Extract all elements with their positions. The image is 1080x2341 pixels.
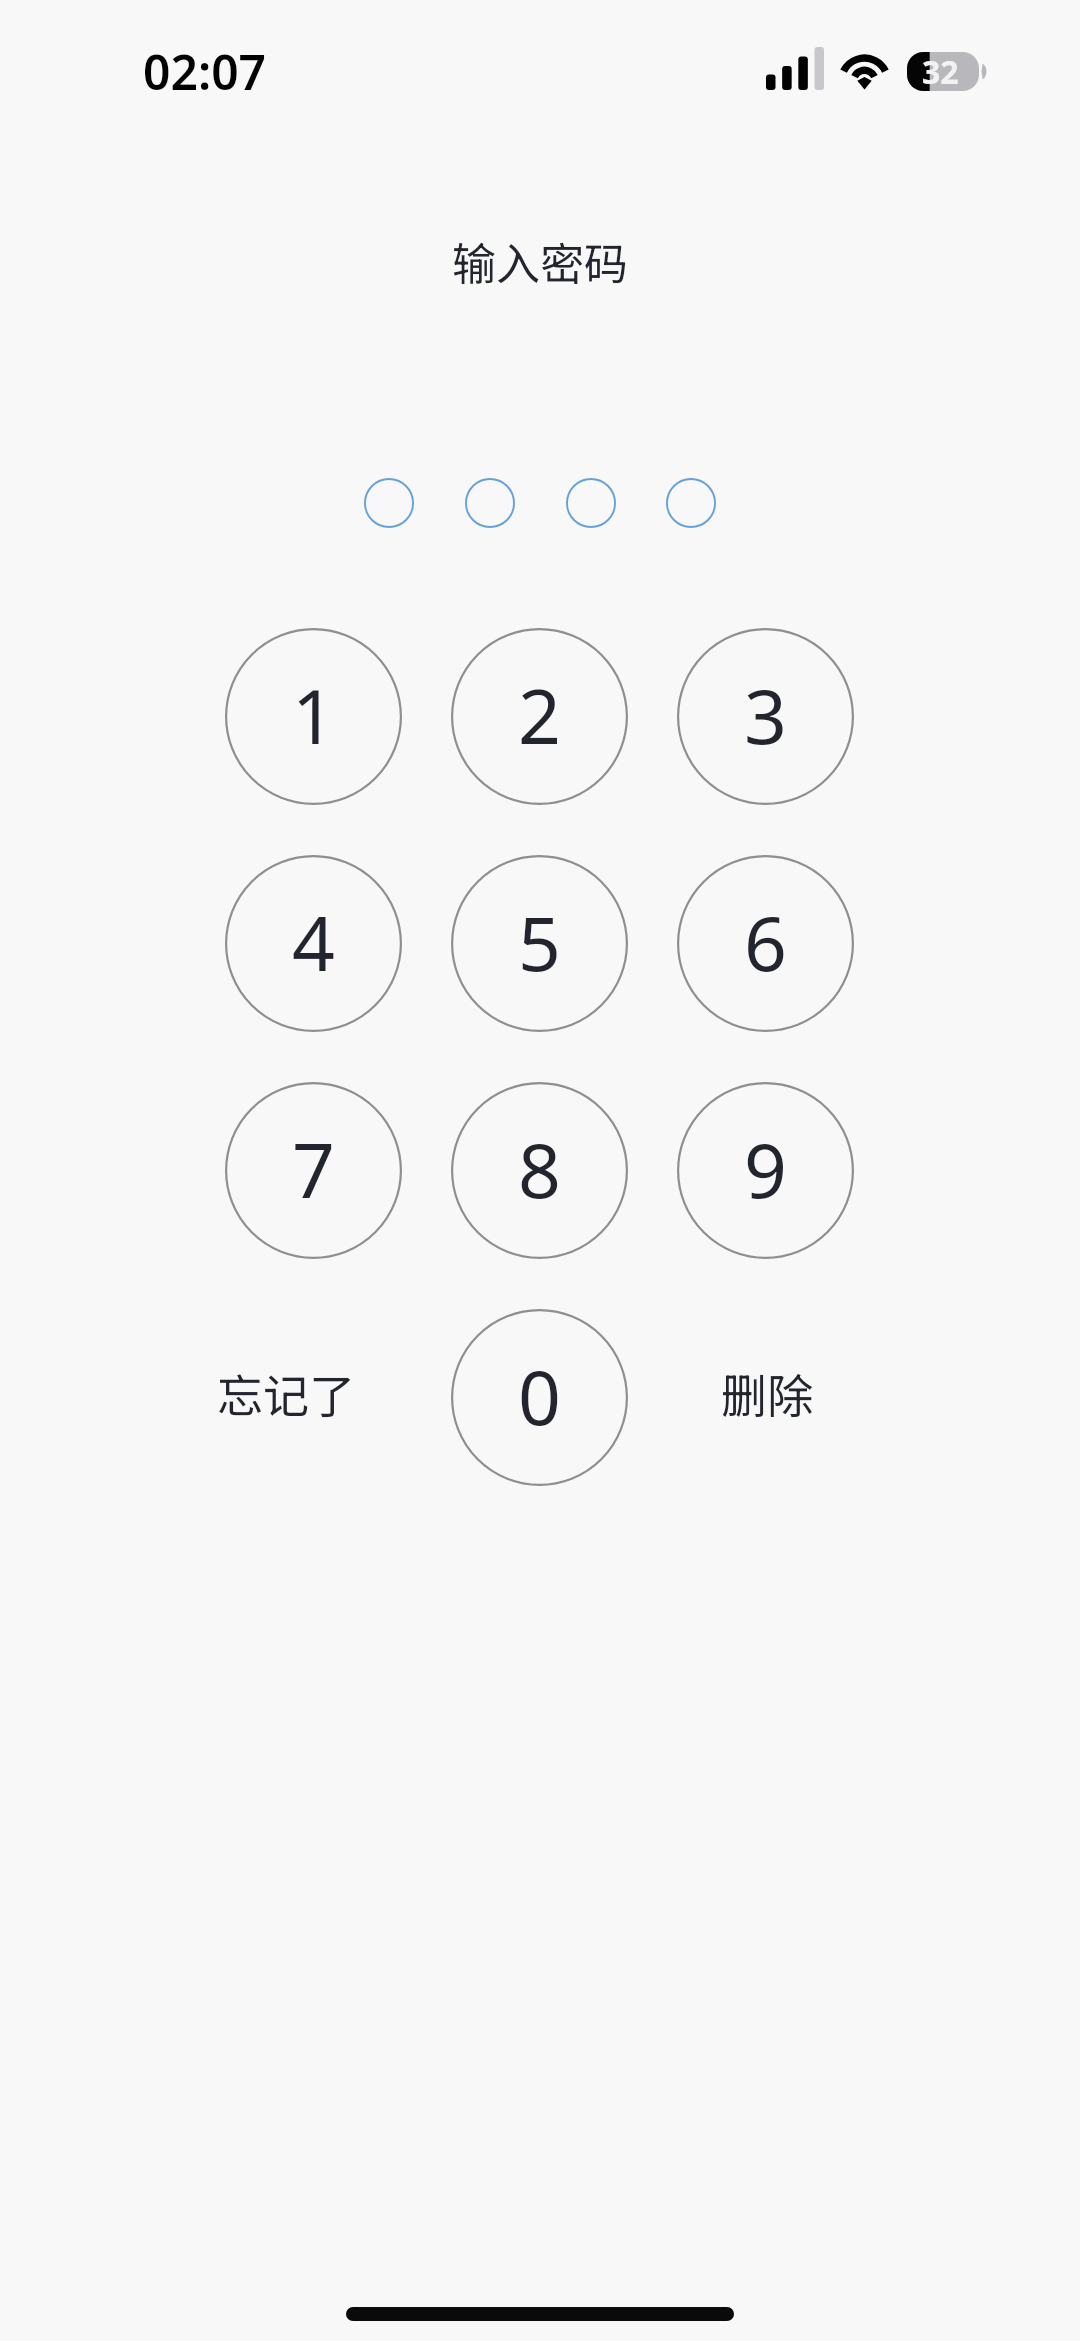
staticText: 3: [744, 664, 787, 766]
staticText: 4: [292, 891, 335, 993]
button[interactable]: 8: [451, 1082, 628, 1259]
staticText: 输入密码: [452, 229, 628, 293]
staticText: 0: [518, 1345, 561, 1447]
button[interactable]: 5: [451, 855, 628, 1032]
staticText: 删除: [721, 1360, 813, 1427]
button[interactable]: 6: [677, 855, 854, 1032]
button[interactable]: 1: [225, 628, 402, 805]
other: Cellular signal: [766, 47, 824, 90]
button[interactable]: 0: [451, 1309, 628, 1486]
staticText: 2: [518, 664, 561, 766]
button[interactable]: 忘记了: [186, 1333, 386, 1453]
staticText: 6: [744, 891, 787, 993]
staticText: 32: [922, 50, 959, 89]
staticText: 9: [744, 1118, 787, 1220]
button[interactable]: 7: [225, 1082, 402, 1259]
other: Battery 32 percent: [907, 52, 985, 91]
button[interactable]: 4: [225, 855, 402, 1032]
staticText: 02:07: [143, 39, 267, 104]
staticText: 1: [292, 664, 335, 766]
button[interactable]: 2: [451, 628, 628, 805]
staticText: 7: [292, 1118, 335, 1220]
staticText: 8: [518, 1118, 561, 1220]
button[interactable]: 3: [677, 628, 854, 805]
staticText: 忘记了: [217, 1360, 355, 1427]
other: Wi-Fi: [840, 54, 889, 90]
button[interactable]: 9: [677, 1082, 854, 1259]
button[interactable]: 删除: [667, 1333, 867, 1453]
staticText: 5: [518, 891, 561, 993]
